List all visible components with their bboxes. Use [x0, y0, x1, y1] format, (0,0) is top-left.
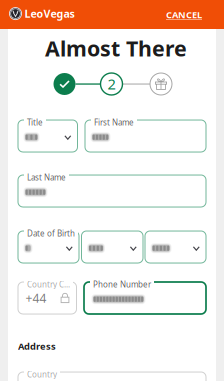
button[interactable]: Year of birth [145, 231, 206, 263]
staticText: Last Name [27, 172, 66, 183]
button[interactable]: +44 [18, 282, 76, 314]
staticText: Country C... [27, 279, 70, 290]
button[interactable]: Month of birth [81, 231, 143, 263]
staticText: Title [27, 117, 43, 128]
button[interactable]: Last Name [18, 175, 206, 207]
staticText: 2 [107, 74, 115, 93]
staticText: Phone Number [93, 279, 151, 290]
button[interactable]: Country [18, 372, 206, 381]
button[interactable]: First Name [85, 120, 206, 152]
staticText: Date of Birth [27, 228, 75, 239]
staticText: CANCEL [166, 8, 202, 21]
button[interactable]: Date of Birth [18, 231, 79, 263]
button[interactable]: LeoVegas home [8, 2, 75, 25]
staticText: Almost There [45, 34, 187, 62]
button[interactable]: Phone Number [84, 282, 206, 314]
button[interactable]: CANCEL [163, 3, 205, 26]
staticText: LeoVegas [24, 6, 74, 21]
staticText: First Name [94, 117, 134, 128]
staticText: +44 [25, 290, 46, 306]
staticText: Address [18, 340, 56, 352]
button[interactable]: Title [18, 120, 77, 152]
staticText: Country [27, 369, 57, 380]
